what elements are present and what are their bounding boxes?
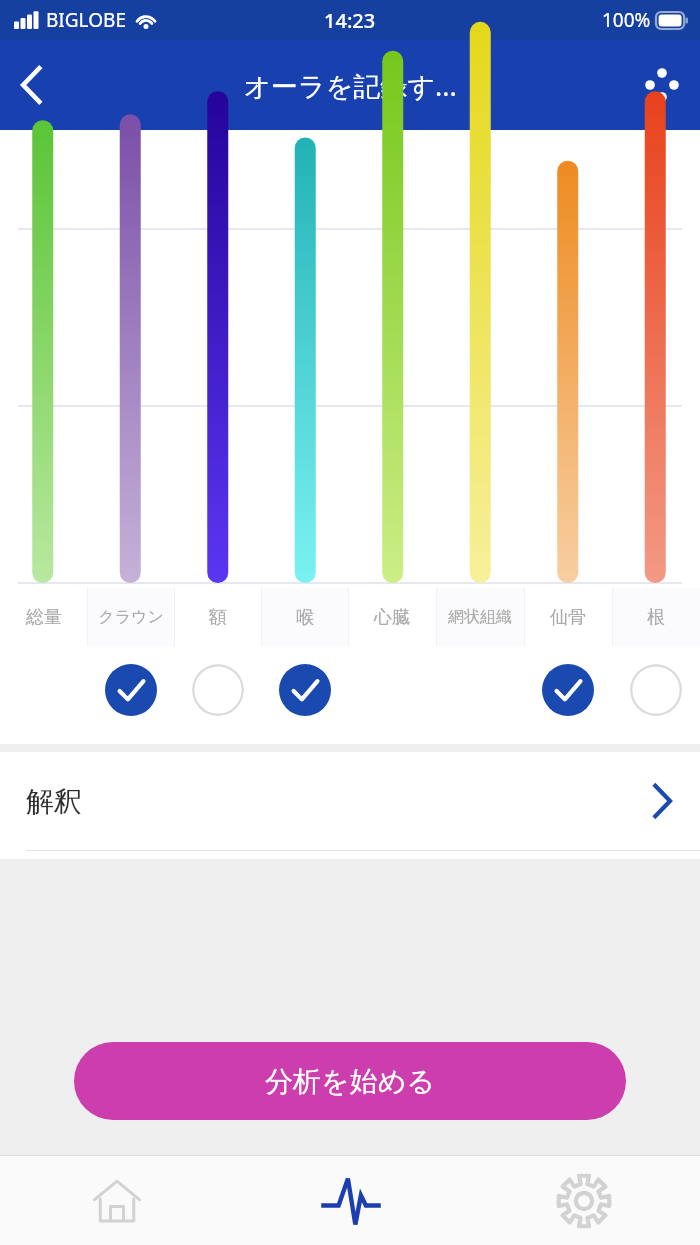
button[interactable]: 分析を始める [74, 1042, 626, 1120]
button[interactable]: More options [624, 47, 700, 123]
button[interactable]: 喉 toggle [279, 664, 331, 716]
button[interactable]: Back [0, 53, 64, 117]
staticText: BIGLOBE [46, 7, 126, 33]
button[interactable]: 根 [612, 588, 700, 646]
button[interactable]: 網状組織 [436, 588, 524, 646]
button[interactable]: 喉 [261, 588, 348, 646]
button[interactable]: Settings [467, 1156, 700, 1245]
staticText: 分析を始める [265, 1064, 435, 1099]
button[interactable]: 心臓 [348, 588, 436, 646]
button[interactable]: 額 toggle [192, 664, 244, 716]
staticText: 解釈 [26, 784, 82, 819]
button[interactable]: クラウン toggle [105, 664, 157, 716]
button[interactable]: 額 [174, 588, 261, 646]
staticText: 額 [209, 606, 227, 629]
button[interactable]: 根 toggle [630, 664, 682, 716]
button[interactable]: Pulse [234, 1156, 467, 1245]
staticText: 仙骨 [550, 606, 586, 629]
staticText: 網状組織 [448, 607, 512, 627]
staticText: 総量 [26, 606, 62, 629]
staticText: 心臓 [374, 606, 410, 629]
button[interactable]: 総量 [0, 588, 87, 646]
staticText: 喉 [296, 606, 314, 629]
staticText: 100% [602, 7, 651, 33]
button[interactable]: クラウン [87, 588, 174, 646]
button[interactable]: 解釈 [0, 752, 700, 850]
staticText: 14:23 [324, 7, 376, 34]
button[interactable]: 仙骨 toggle [542, 664, 594, 716]
button[interactable]: 仙骨 [524, 588, 612, 646]
staticText: オーラを記録す... [243, 67, 457, 104]
staticText: クラウン [98, 607, 164, 627]
button[interactable]: Home [0, 1156, 234, 1245]
staticText: 根 [647, 606, 665, 629]
